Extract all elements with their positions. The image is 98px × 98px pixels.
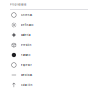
button[interactable]: Espesor	[0, 60, 98, 70]
button[interactable]: Aviación	[0, 80, 98, 90]
button[interactable]: Antenas	[0, 10, 98, 20]
staticText: Tamaño	[21, 53, 31, 57]
staticText: Refinado	[21, 23, 34, 27]
staticText: Presión	[21, 43, 32, 47]
staticText: Material	[21, 33, 31, 37]
button[interactable]: Medidas	[0, 70, 98, 80]
staticText: Medidas	[21, 73, 32, 77]
staticText: Propiedades	[10, 3, 26, 6]
button[interactable]: Presión	[0, 40, 98, 50]
button[interactable]: Tamaño	[0, 50, 98, 60]
button[interactable]: Material	[0, 30, 98, 40]
staticText: Aviación	[21, 83, 33, 87]
staticText: Antenas	[21, 13, 32, 17]
button[interactable]: Refinado	[0, 20, 98, 30]
staticText: Espesor	[21, 63, 32, 67]
